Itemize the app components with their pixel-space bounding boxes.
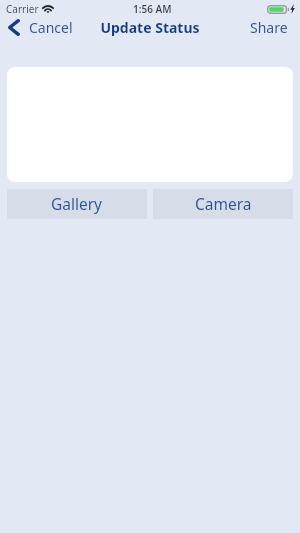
staticText: Share xyxy=(250,18,288,37)
button[interactable]: Camera xyxy=(153,189,293,219)
other: Battery charging xyxy=(267,4,295,14)
staticText: Cancel xyxy=(29,18,73,37)
staticText: 1:56 AM xyxy=(133,2,172,16)
button[interactable]: Gallery xyxy=(7,189,147,219)
button[interactable]: Share xyxy=(240,15,300,40)
staticText: Update Status xyxy=(100,18,200,37)
staticText: Camera xyxy=(195,193,252,214)
staticText: Carrier xyxy=(6,2,39,16)
other: Wi-Fi xyxy=(43,5,53,13)
staticText: Gallery xyxy=(51,193,103,214)
button[interactable]: Cancel xyxy=(0,15,83,40)
